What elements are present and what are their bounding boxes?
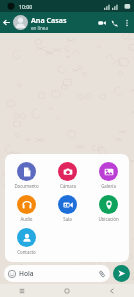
button[interactable]: Video call — [95, 16, 108, 29]
staticText: Galería — [101, 183, 116, 189]
staticText: 10:00 — [19, 3, 33, 10]
staticText: Documento — [14, 183, 39, 189]
button[interactable]: More options — [121, 17, 133, 29]
staticText: Sala — [63, 216, 72, 222]
staticText: Ubicación — [98, 216, 119, 222]
staticText: en línea — [31, 25, 49, 31]
staticText: Cámara — [60, 183, 76, 189]
button[interactable]: Ana Casas — [31, 15, 95, 31]
button[interactable]: Ubicación — [97, 194, 120, 223]
button[interactable]: Contacto — [16, 227, 37, 256]
button[interactable]: Home — [44, 284, 89, 297]
button[interactable]: Sala — [57, 194, 78, 223]
staticText: Audio — [20, 216, 33, 222]
button[interactable]: Send — [113, 265, 130, 282]
staticText: Contacto — [17, 249, 36, 255]
button[interactable]: Recent apps — [0, 284, 44, 297]
button[interactable]: Back — [89, 284, 134, 297]
staticText: Hola — [19, 269, 97, 278]
button[interactable]: Call — [108, 16, 121, 29]
button[interactable]: Documento — [13, 161, 40, 190]
button[interactable]: Galería — [98, 161, 119, 190]
staticText: Ana Casas — [31, 15, 67, 25]
button[interactable]: Profile photo — [13, 15, 28, 30]
button[interactable]: Audio — [16, 194, 37, 223]
button[interactable]: Cámara — [57, 161, 78, 190]
button[interactable]: Attach — [97, 269, 106, 278]
button[interactable]: Hola — [4, 265, 110, 282]
button[interactable]: Back — [0, 16, 13, 29]
